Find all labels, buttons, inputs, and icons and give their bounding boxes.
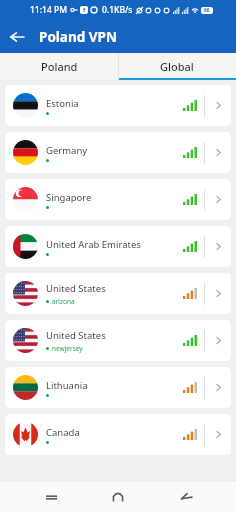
staticText: Poland xyxy=(41,59,78,74)
button[interactable]: United Arab Emirates xyxy=(5,226,231,267)
staticText: United States xyxy=(46,282,106,295)
staticText: arizona xyxy=(52,297,75,306)
button[interactable]: Poland xyxy=(0,53,118,80)
staticText: Poland VPN xyxy=(39,28,117,46)
staticText: United Arab Emirates xyxy=(46,238,141,251)
button[interactable]: United States xyxy=(5,273,231,314)
button[interactable]: Open United Arab Emirates xyxy=(205,226,231,267)
button[interactable]: United States xyxy=(5,320,231,361)
button[interactable]: Open Lithuania xyxy=(205,367,231,408)
button[interactable]: Open United States xyxy=(205,320,231,361)
staticText: United States xyxy=(46,329,106,342)
button[interactable]: Recents xyxy=(34,482,68,512)
button[interactable]: Canada xyxy=(5,414,231,455)
button[interactable]: Global xyxy=(118,53,236,80)
button[interactable]: Open Singapore xyxy=(205,179,231,220)
staticText: 86 xyxy=(204,7,210,14)
staticText: Canada xyxy=(46,426,80,439)
button[interactable]: Open Canada xyxy=(205,414,231,455)
button[interactable]: Home xyxy=(101,482,135,512)
staticText: f xyxy=(83,6,86,14)
button[interactable]: Open Estonia xyxy=(205,85,231,126)
button[interactable]: Singapore xyxy=(5,179,231,220)
staticText: Singapore xyxy=(46,191,92,204)
button[interactable]: Back xyxy=(169,482,203,512)
staticText: Germany xyxy=(46,144,88,157)
staticText: newjersey xyxy=(52,344,83,353)
button[interactable]: Open Germany xyxy=(205,132,231,173)
button[interactable]: Estonia xyxy=(5,85,231,126)
staticText: 0.1KB/s xyxy=(102,4,133,16)
button[interactable]: Lithuania xyxy=(5,367,231,408)
staticText: Estonia xyxy=(46,97,79,110)
staticText: Lithuania xyxy=(46,379,88,392)
staticText: 11:14 PM xyxy=(30,4,67,16)
staticText: Global xyxy=(160,59,194,74)
button[interactable]: Germany xyxy=(5,132,231,173)
button[interactable]: Back xyxy=(0,20,33,53)
button[interactable]: Open United States xyxy=(205,273,231,314)
